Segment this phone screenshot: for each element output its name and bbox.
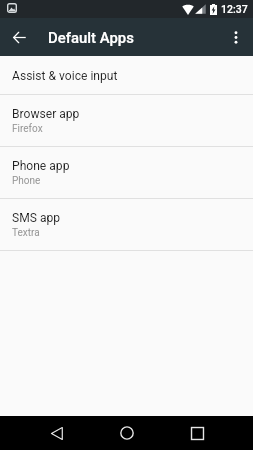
button[interactable]: Recents [180, 416, 214, 450]
staticText: Default Apps [48, 29, 134, 46]
button[interactable]: Home [110, 416, 144, 450]
button[interactable]: Back [0, 18, 38, 56]
button[interactable]: SMS app [0, 199, 253, 250]
staticText: Assist & voice input [12, 69, 118, 83]
staticText: Phone [12, 175, 41, 187]
button[interactable]: Back [40, 416, 74, 450]
staticText: Phone app [12, 159, 70, 173]
staticText: Firefox [12, 123, 43, 135]
staticText: SMS app [12, 211, 61, 225]
button[interactable]: Phone app [0, 147, 253, 198]
staticText: 12:37 [221, 3, 248, 15]
button[interactable]: Assist & voice input [0, 56, 253, 94]
staticText: Browser app [12, 107, 80, 121]
staticText: Textra [12, 227, 40, 239]
button[interactable]: More options [219, 20, 253, 54]
button[interactable]: Browser app [0, 95, 253, 146]
